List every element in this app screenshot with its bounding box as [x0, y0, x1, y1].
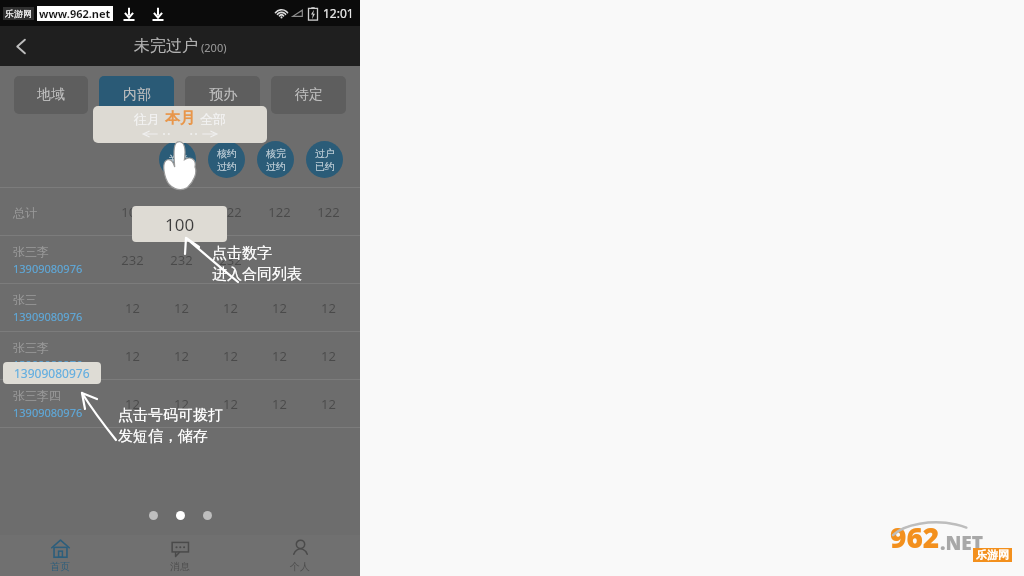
staticText: 张三李 — [13, 244, 49, 259]
staticText: 122 — [219, 203, 242, 221]
staticText: 12 — [125, 299, 140, 317]
staticText: 乐游网 — [976, 548, 1009, 562]
staticText: 个人 — [290, 560, 310, 573]
staticText: 核约 — [217, 147, 237, 160]
staticText: 232 — [121, 251, 144, 269]
staticText: 122 — [170, 203, 193, 221]
button[interactable] — [149, 511, 158, 520]
staticText: 待定 — [295, 86, 323, 104]
staticText: 12 — [125, 395, 140, 413]
staticText: 消息 — [170, 560, 190, 573]
staticText: 预办 — [209, 86, 237, 104]
staticText: 本月 — [165, 109, 195, 128]
staticText: 12 — [174, 299, 189, 317]
staticText: 12 — [223, 347, 238, 365]
button[interactable]: 13909080976 — [3, 362, 101, 384]
staticText: 12 — [272, 299, 287, 317]
button[interactable]: 核约 — [208, 141, 245, 178]
staticText: 962 — [890, 518, 940, 556]
button[interactable]: 13909080976 — [13, 405, 83, 420]
button[interactable] — [176, 511, 185, 520]
button[interactable]: 往月 — [93, 106, 267, 143]
staticText: 张三 — [13, 292, 37, 307]
staticText: 122 — [317, 203, 340, 221]
button[interactable]: 13909080976 — [13, 309, 83, 324]
button[interactable]: 待定 — [271, 76, 346, 114]
staticText: 全部 — [200, 111, 226, 127]
button[interactable]: 张三李 — [0, 236, 360, 284]
staticText: 12 — [272, 347, 287, 365]
staticText: 232 — [219, 251, 242, 269]
staticText: 过约 — [266, 160, 286, 173]
staticText: 12:01 — [323, 5, 354, 21]
staticText: 首页 — [50, 560, 70, 573]
staticText: 张三李四 — [13, 388, 61, 403]
button[interactable]: 过户 — [306, 141, 343, 178]
button[interactable]: Back — [0, 26, 42, 66]
button[interactable]: 关联 — [159, 141, 196, 178]
button[interactable]: 消息 — [120, 535, 240, 576]
staticText: 100 — [121, 203, 144, 221]
staticText: 往月 — [134, 111, 160, 127]
staticText: .NET — [940, 530, 983, 556]
button[interactable]: 预办 — [185, 76, 260, 114]
button[interactable]: 总计 — [0, 188, 360, 236]
button[interactable]: 内部 — [99, 76, 174, 114]
staticText: 12 — [174, 395, 189, 413]
staticText: 12 — [125, 347, 140, 365]
staticText: 点击数字 — [212, 244, 272, 263]
staticText: 12 — [321, 299, 336, 317]
staticText: 张三李 — [13, 340, 49, 355]
staticText: 进入合同列表 — [212, 265, 302, 284]
button[interactable]: 13909080976 — [13, 357, 83, 372]
button[interactable]: 核完 — [257, 141, 294, 178]
button[interactable]: 张三李 — [0, 332, 360, 380]
staticText: 过户 — [315, 147, 335, 160]
button[interactable]: 个人 — [240, 535, 360, 576]
staticText: 13909080976 — [14, 365, 90, 381]
button[interactable] — [203, 511, 212, 520]
staticText: 发短信，储存 — [118, 427, 208, 446]
staticText: 过约 — [217, 160, 237, 173]
staticText: 点击号码可拨打 — [118, 406, 223, 425]
staticText: 12 — [321, 347, 336, 365]
staticText: 12 — [223, 299, 238, 317]
staticText: 内部 — [123, 86, 151, 104]
staticText: www.962.net — [39, 6, 111, 21]
staticText: 总计 — [13, 205, 37, 220]
staticText: 核完 — [266, 147, 286, 160]
staticText: 12 — [174, 347, 189, 365]
staticText: 12 — [272, 395, 287, 413]
staticText: 地域 — [37, 86, 65, 104]
button[interactable]: 首页 — [0, 535, 120, 576]
staticText: 12 — [321, 395, 336, 413]
button[interactable]: 100 — [132, 206, 227, 242]
staticText: 100 — [165, 213, 195, 236]
staticText: 232 — [170, 251, 193, 269]
staticText: 未完过户 — [134, 36, 198, 56]
button[interactable]: 13909080976 — [13, 261, 83, 276]
staticText: (200) — [201, 40, 227, 55]
button[interactable]: 地域 — [14, 76, 88, 114]
button[interactable]: 张三 — [0, 284, 360, 332]
staticText: 关联 — [168, 153, 188, 166]
button[interactable]: 张三李四 — [0, 380, 360, 428]
staticText: 122 — [268, 203, 291, 221]
staticText: 12 — [223, 395, 238, 413]
staticText: 已约 — [315, 160, 335, 173]
staticText: 乐游网 — [5, 8, 32, 19]
